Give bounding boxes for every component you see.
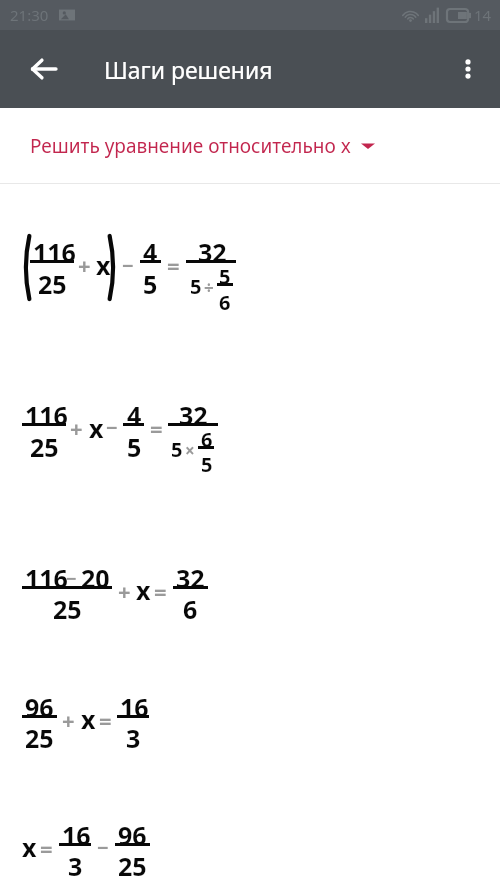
- staticText: ×: [185, 439, 195, 462]
- staticText: 5: [201, 451, 213, 478]
- staticText: x: [96, 248, 111, 282]
- staticText: 6: [201, 426, 213, 453]
- staticText: +: [78, 250, 91, 280]
- staticText: 25: [30, 430, 59, 464]
- staticText: =: [167, 250, 180, 280]
- staticText: 3: [126, 721, 141, 755]
- staticText: 5: [219, 263, 231, 290]
- staticText: 6: [219, 289, 231, 316]
- staticText: x: [136, 573, 151, 607]
- staticText: 5: [127, 430, 142, 464]
- staticText: 96: [25, 690, 54, 724]
- staticText: 5: [143, 267, 158, 301]
- staticText: 5: [171, 436, 183, 463]
- staticText: 32: [179, 398, 208, 432]
- staticText: +: [70, 413, 83, 443]
- staticText: +: [118, 576, 131, 606]
- staticText: x: [89, 411, 104, 445]
- staticText: ÷: [204, 276, 214, 299]
- staticText: 16: [120, 690, 149, 724]
- staticText: −: [66, 566, 77, 591]
- staticText: Шаги решения: [104, 54, 273, 85]
- staticText: Решить уравнение относительно x: [30, 133, 351, 159]
- staticText: x: [81, 702, 96, 736]
- staticText: −: [97, 834, 109, 861]
- staticText: −: [122, 252, 134, 279]
- staticText: =: [154, 576, 167, 606]
- staticText: 25: [25, 721, 54, 755]
- staticText: 116: [33, 235, 76, 269]
- staticText: 25: [38, 267, 67, 301]
- staticText: 116: [25, 561, 68, 595]
- staticText: =: [150, 413, 163, 443]
- staticText: 96: [118, 818, 147, 852]
- staticText: 4: [143, 235, 158, 269]
- staticText: 6: [183, 592, 198, 626]
- button[interactable]: More options: [444, 45, 492, 93]
- staticText: 5: [190, 273, 202, 300]
- button[interactable]: Решить уравнение относительно x: [0, 108, 500, 183]
- staticText: 4: [127, 398, 142, 432]
- staticText: +: [62, 705, 75, 735]
- staticText: 14: [474, 5, 492, 25]
- staticText: =: [99, 705, 112, 735]
- staticText: 116: [25, 398, 68, 432]
- button[interactable]: Back: [18, 43, 70, 95]
- staticText: −: [106, 414, 118, 441]
- staticText: 32: [198, 235, 227, 269]
- staticText: 25: [53, 592, 82, 626]
- staticText: =: [40, 833, 53, 863]
- staticText: 32: [176, 561, 205, 595]
- staticText: 3: [68, 849, 83, 883]
- staticText: x: [22, 830, 37, 864]
- staticText: 21:30: [10, 5, 49, 25]
- staticText: 16: [62, 818, 91, 852]
- staticText: 20: [81, 561, 110, 595]
- staticText: 25: [118, 849, 147, 883]
